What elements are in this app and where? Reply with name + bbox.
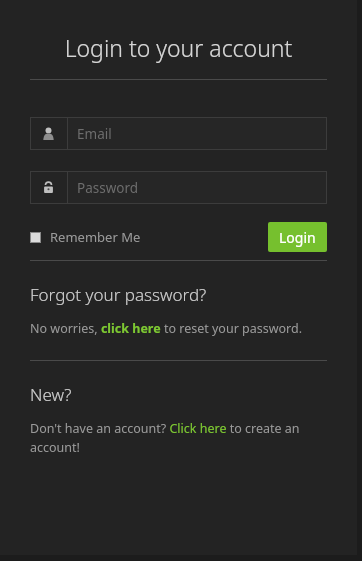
staticText: Remember Me xyxy=(50,228,141,246)
staticText: Don't have an account? Click here to cre… xyxy=(30,420,327,456)
staticText: No worries, click here to reset your pas… xyxy=(30,320,303,337)
staticText: Login xyxy=(279,228,316,247)
button[interactable]: Password xyxy=(30,171,327,204)
button[interactable]: No worries, click here to reset your pas… xyxy=(30,320,303,337)
staticText: Forgot your password? xyxy=(30,283,207,306)
staticText: New? xyxy=(30,383,72,406)
button[interactable]: Login xyxy=(268,222,327,252)
staticText: Login to your account xyxy=(30,32,327,63)
button[interactable]: Remember Me xyxy=(30,228,141,246)
button[interactable]: Don't have an account? Click here to cre… xyxy=(30,420,327,456)
staticText: Email xyxy=(77,125,112,143)
staticText: Password xyxy=(77,179,139,197)
button[interactable]: Email xyxy=(30,117,327,150)
